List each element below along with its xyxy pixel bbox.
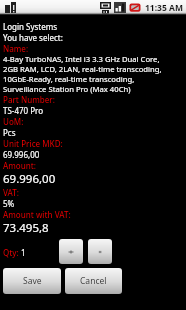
staticText: 69.996,00 [3, 171, 56, 187]
staticText: You have select: [3, 32, 63, 43]
staticText: Name: [3, 43, 29, 54]
staticText: Login Systems [3, 21, 58, 32]
staticText: Pcs [3, 127, 16, 138]
staticText: 69.996,00 [3, 149, 40, 160]
staticText: Cancel [80, 275, 107, 287]
staticText: Part Number: [3, 94, 55, 105]
staticText: VAT: [3, 187, 19, 198]
staticText: Amount with VAT: [3, 209, 71, 220]
staticText: Save [23, 275, 42, 287]
staticText: TS-470 Pro [3, 105, 44, 116]
staticText: Unit Price MKD: [3, 138, 63, 149]
staticText: Qty: [3, 247, 21, 258]
staticText: 73.495,8 [3, 220, 49, 236]
staticText: 1 [21, 247, 26, 258]
staticText: 5% [3, 198, 15, 209]
button[interactable]: Save [3, 268, 61, 294]
button[interactable]: Cancel [65, 268, 122, 294]
button[interactable]: Increase quantity [59, 239, 83, 264]
staticText: 4-Bay TurboNAS, Intel i3 3.3 GHz Dual Co… [3, 54, 162, 94]
staticText: UoM: [3, 116, 24, 127]
staticText: 11:35 AM [145, 2, 183, 14]
button[interactable]: Decrease quantity [88, 239, 112, 264]
staticText: Amount: [3, 160, 36, 171]
